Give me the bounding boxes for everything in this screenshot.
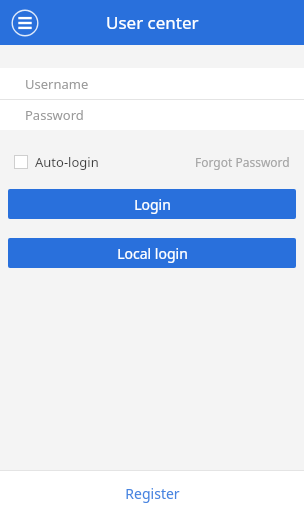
staticText: Local login [117,244,188,263]
button[interactable]: Password [0,100,304,130]
button[interactable]: Auto-login [14,153,103,171]
button[interactable]: Register [0,471,304,516]
staticText: Username [25,75,89,93]
button[interactable]: Open navigation menu [8,6,42,40]
staticText: Register [125,484,180,503]
button[interactable]: Local login [8,238,296,268]
button[interactable]: Forgot Password [195,154,290,170]
staticText: Login [134,195,171,214]
staticText: Password [25,106,84,124]
button[interactable]: Login [8,189,296,219]
staticText: User center [106,11,199,34]
staticText: Auto-login [35,153,99,171]
button[interactable]: Username [0,68,304,99]
staticText: Forgot Password [195,154,290,170]
